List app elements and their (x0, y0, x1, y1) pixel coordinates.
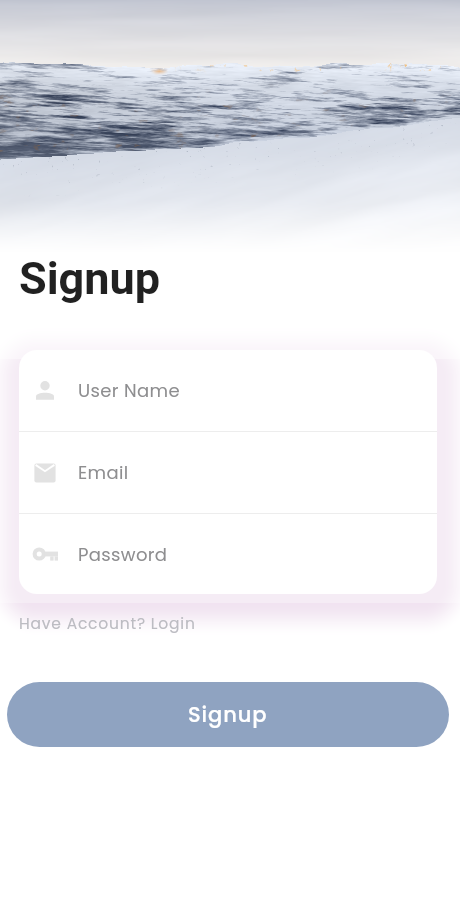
staticText: Have Account? Login (19, 613, 196, 635)
button[interactable]: Email (19, 432, 437, 513)
staticText: Signup (188, 700, 268, 729)
staticText: User Name (78, 378, 180, 403)
staticText: Email (78, 460, 129, 485)
other: User name (32, 378, 58, 404)
other: Email (32, 460, 58, 486)
button[interactable]: Signup (7, 682, 449, 747)
button[interactable]: Have Account? Login (19, 613, 196, 635)
button[interactable]: Password (19, 514, 437, 594)
button[interactable]: User name (19, 350, 437, 431)
staticText: Signup (19, 252, 161, 305)
other: Password (32, 541, 58, 567)
staticText: Password (78, 542, 168, 567)
